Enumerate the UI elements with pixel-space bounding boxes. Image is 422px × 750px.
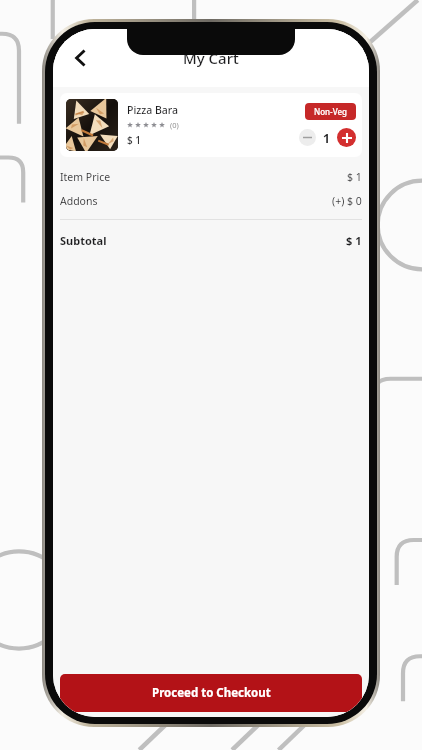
staticText: Item Price [60, 170, 111, 184]
button[interactable]: Back [59, 36, 103, 80]
staticText: $ 1 [346, 233, 362, 248]
button[interactable]: Increase quantity [337, 128, 356, 147]
staticText: (0) [170, 120, 179, 130]
staticText: Proceed to Checkout [152, 685, 271, 701]
button[interactable]: Pizza Bara [60, 93, 362, 157]
staticText: My Cart [183, 48, 239, 68]
staticText: Subtotal [60, 233, 107, 248]
button[interactable]: Proceed to Checkout [60, 674, 362, 712]
staticText: (+) $ 0 [332, 194, 362, 208]
staticText: Non-Veg [314, 106, 347, 117]
staticText: $ 1 [127, 133, 142, 147]
staticText: $ 1 [347, 170, 362, 184]
button[interactable]: Decrease quantity [299, 129, 316, 146]
staticText: Addons [60, 194, 98, 208]
staticText: Pizza Bara [127, 103, 179, 117]
staticText: 1 [323, 130, 330, 146]
button[interactable]: Non-Veg [305, 103, 356, 120]
